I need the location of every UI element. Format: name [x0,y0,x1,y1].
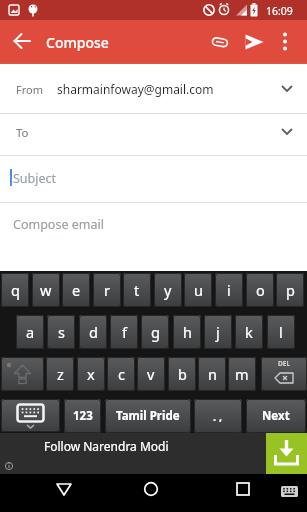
button[interactable]: g [141,315,169,349]
staticText: e [72,280,81,300]
button[interactable]: b [168,357,196,391]
button[interactable] [0,20,44,62]
staticText: Compose email [13,216,104,233]
button[interactable]: . , [194,399,242,433]
button[interactable]: t [123,273,151,307]
staticText: DEL [278,359,291,368]
button[interactable]: m [228,357,256,391]
staticText: n [208,364,217,384]
staticText: j [216,322,220,342]
staticText: From [16,82,43,97]
button[interactable]: n [198,357,226,391]
button[interactable]: e [62,273,90,307]
button[interactable] [272,24,302,58]
staticText: f [122,322,127,342]
staticText: s [58,322,65,342]
button[interactable] [1,357,44,391]
button[interactable] [223,474,263,512]
staticText: a [26,322,35,342]
button[interactable]: From [0,64,307,113]
staticText: Follow Narendra Modi [44,438,169,454]
staticText: x [87,364,95,384]
staticText: p [286,280,295,300]
button[interactable] [276,474,304,512]
button[interactable]: y [154,273,182,307]
staticText: 16:09 [266,4,293,18]
staticText: t [134,280,140,300]
staticText: g [151,322,160,342]
button[interactable]: x [77,357,105,391]
button[interactable]: Subject [0,156,307,202]
staticText: w [40,280,52,300]
button[interactable]: Tamil Pride [105,399,191,433]
button[interactable]: k [235,315,263,349]
button[interactable]: o [246,273,274,307]
staticText: h [183,322,192,342]
button[interactable] [1,399,60,432]
staticText: z [57,364,64,384]
button[interactable]: 123 [64,399,101,433]
button[interactable]: c [107,357,135,391]
staticText: k [245,322,253,342]
button[interactable] [266,433,307,474]
button[interactable]: l [267,315,295,349]
button[interactable] [131,474,171,512]
button[interactable]: d [79,315,107,349]
button[interactable]: i [215,273,243,307]
button[interactable]: q [1,273,29,307]
staticText: . , [213,409,223,424]
button[interactable]: f [110,315,138,349]
button[interactable]: a [16,315,44,349]
staticText: l [279,322,283,342]
button[interactable]: u [184,273,212,307]
button[interactable]: Next [246,399,306,433]
button[interactable]: DEL [261,357,307,391]
button[interactable]: s [47,315,75,349]
staticText: 123 [73,408,93,424]
staticText: v [147,364,155,384]
button[interactable]: h [173,315,201,349]
button[interactable] [44,474,84,512]
button[interactable]: r [93,273,121,307]
button[interactable] [238,24,272,58]
button[interactable]: Follow Narendra Modi [0,433,307,474]
staticText: To [16,125,29,141]
button[interactable]: p [276,273,304,307]
staticText: b [178,364,187,384]
staticText: Compose [46,33,109,52]
staticText: r [104,280,110,300]
staticText: u [194,280,203,300]
button[interactable]: v [137,357,165,391]
staticText: Next [262,408,290,424]
staticText: c [118,364,125,384]
staticText: o [256,280,265,300]
button[interactable]: To [0,114,307,155]
button[interactable]: j [204,315,232,349]
staticText: Subject [13,170,57,187]
button[interactable]: z [46,357,74,391]
staticText: Tamil Pride [116,408,180,424]
staticText: y [164,280,172,300]
button[interactable] [203,24,237,58]
button[interactable]: Compose email [0,203,307,271]
staticText: sharmainfoway@gmail.com [57,81,214,97]
staticText: q [11,280,20,300]
button[interactable]: w [32,273,60,307]
staticText: i [227,280,231,300]
staticText: d [89,322,98,342]
staticText: m [235,364,249,384]
